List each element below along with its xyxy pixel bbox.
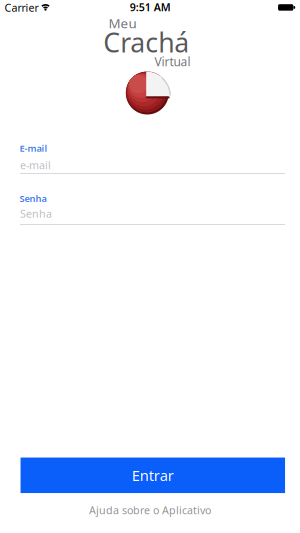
button[interactable]: Senha	[20, 204, 285, 222]
staticText: 9:51 AM	[130, 0, 171, 14]
staticText: Senha	[20, 206, 52, 221]
staticText: Meu	[109, 14, 137, 32]
staticText: E-mail	[19, 142, 47, 154]
button[interactable]: e-mail	[20, 156, 285, 174]
staticText: Crachá	[103, 24, 189, 60]
staticText: Senha	[19, 192, 46, 205]
staticText: Carrier	[4, 0, 38, 15]
staticText: Virtual	[154, 53, 190, 69]
button[interactable]: Entrar	[21, 458, 285, 493]
staticText: Entrar	[132, 466, 174, 485]
staticText: Ajuda sobre o Aplicativo	[89, 503, 211, 517]
button[interactable]: Ajuda sobre o Aplicativo	[89, 503, 211, 517]
staticText: e-mail	[20, 158, 51, 172]
